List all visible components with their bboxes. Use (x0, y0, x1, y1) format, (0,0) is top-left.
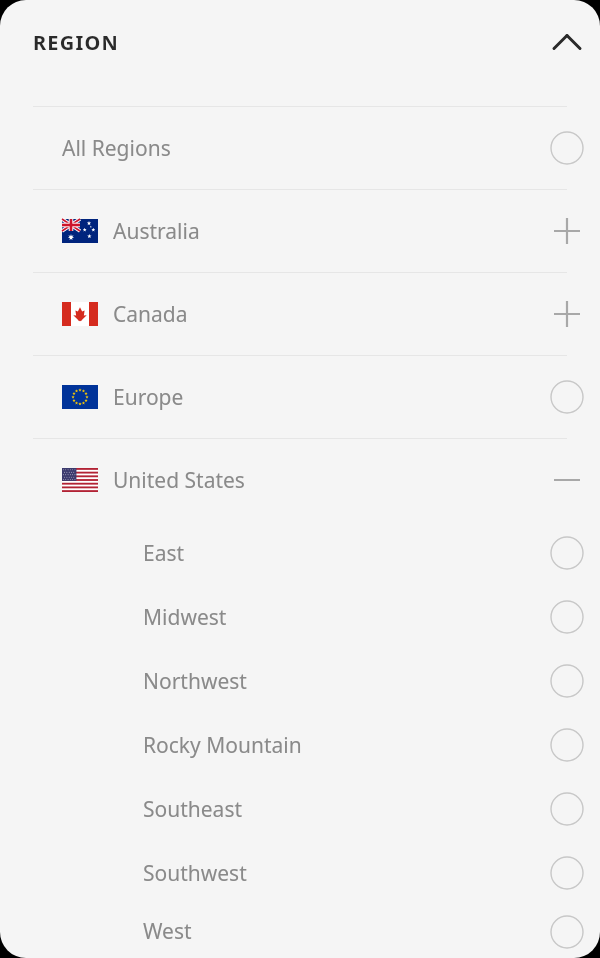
staticText: Southeast (143, 795, 243, 824)
other: Collapse region section (549, 0, 585, 84)
staticText: United States (113, 466, 245, 495)
button[interactable]: Southwest (0, 841, 600, 905)
staticText: REGION (33, 29, 119, 56)
staticText: Southwest (143, 859, 247, 888)
staticText: Canada (113, 300, 188, 329)
staticText: Northwest (143, 667, 247, 696)
staticText: Midwest (143, 603, 227, 632)
button[interactable]: All Regions (0, 107, 600, 189)
staticText: Rocky Mountain (143, 731, 302, 760)
button[interactable]: East (0, 521, 600, 585)
staticText: East (143, 539, 185, 568)
button[interactable]: West (0, 905, 600, 958)
staticText: West (143, 917, 192, 946)
button[interactable]: Northwest (0, 649, 600, 713)
button[interactable]: United States (0, 439, 600, 521)
button[interactable]: REGION (0, 0, 600, 106)
button[interactable]: Southeast (0, 777, 600, 841)
button[interactable]: Rocky Mountain (0, 713, 600, 777)
button[interactable]: Midwest (0, 585, 600, 649)
button[interactable]: Australia (0, 190, 600, 272)
staticText: All Regions (62, 134, 171, 163)
button[interactable]: Europe (0, 356, 600, 438)
button[interactable]: Canada (0, 273, 600, 355)
staticText: Europe (113, 383, 184, 412)
staticText: Australia (113, 217, 200, 246)
